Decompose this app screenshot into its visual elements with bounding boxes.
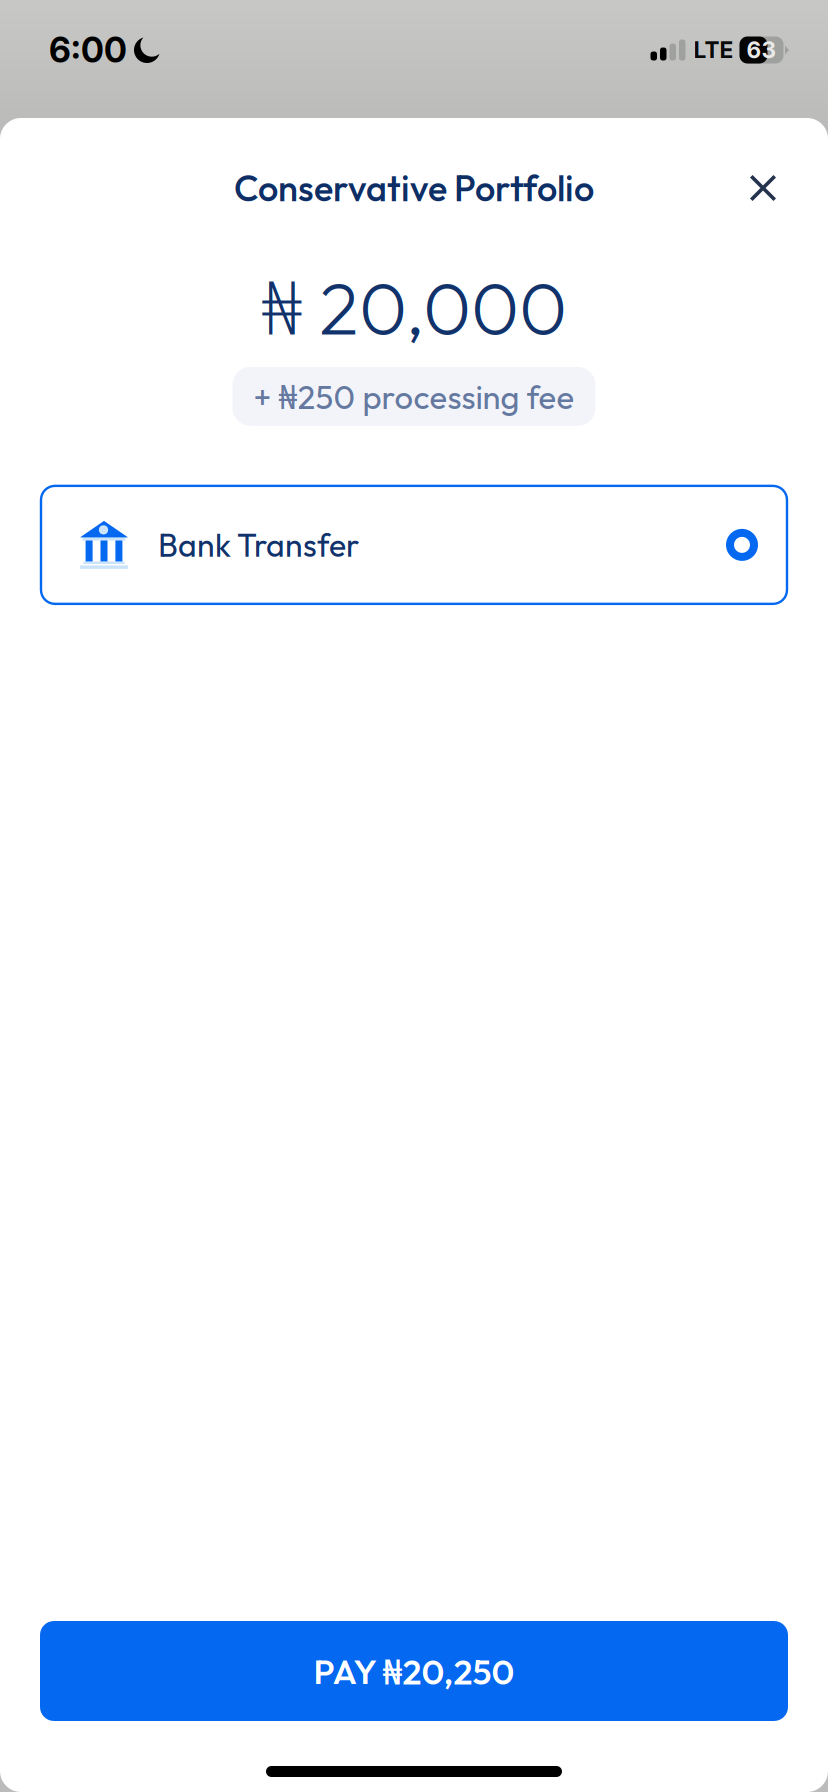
staticText: ₦ 20,000	[261, 256, 567, 356]
staticText: LTE	[693, 36, 733, 64]
staticText: PAY ₦20,250	[313, 1647, 514, 1695]
staticText: 63	[746, 36, 776, 64]
button[interactable]: Close	[729, 154, 797, 222]
staticText: + ₦250 processing fee	[253, 374, 574, 419]
button[interactable]: Bank Transfer	[41, 486, 787, 604]
staticText: Bank Transfer	[158, 525, 359, 565]
staticText: 6:00	[49, 29, 127, 71]
button[interactable]: PAY ₦20,250	[40, 1621, 788, 1721]
staticText: Conservative Portfolio	[234, 165, 594, 211]
